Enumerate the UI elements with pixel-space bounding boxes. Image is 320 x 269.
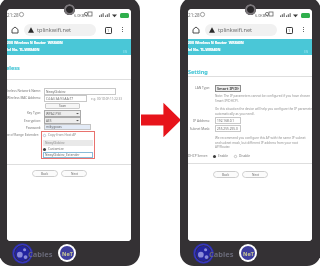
- staticText: Encryption:: [7, 119, 41, 123]
- staticText: tplinkwifi.net: [218, 26, 253, 34]
- staticText: Model No. TL-WR840N: [7, 47, 40, 52]
- staticText: We recommend you configure this AP with …: [215, 136, 306, 148]
- staticText: AC1200 Wireless N Router WR840N: [188, 40, 244, 45]
- staticText: 255.255.255.0: [217, 127, 238, 131]
- staticText: Back: [222, 173, 230, 177]
- staticText: Smart IP(DHCP): [217, 86, 239, 91]
- staticText: Cables: [28, 249, 53, 259]
- staticText: Name of Range Extender:: [7, 133, 39, 137]
- staticText: 6.0KB/s: [74, 13, 88, 18]
- button[interactable]: WPA2-PSK: [46, 110, 79, 117]
- staticText: tplinkwifi.net: [37, 26, 72, 34]
- staticText: DHCP Server:: [188, 154, 208, 158]
- button[interactable]: Home: [190, 24, 201, 35]
- staticText: Customize: [48, 147, 64, 151]
- staticText: Disable: [239, 154, 251, 158]
- staticText: NeT: [62, 250, 73, 257]
- button[interactable]: C4:A3:3A:93:AA:77: [46, 95, 87, 102]
- staticText: EN: [123, 50, 128, 54]
- button[interactable]: NewyGlobinz: [46, 88, 116, 95]
- staticText: NewyGlobinz_Extender: [45, 153, 80, 157]
- button[interactable]: Home: [9, 24, 20, 35]
- button[interactable]: Customize: [43, 147, 64, 151]
- staticText: NewyGlobinz: [45, 141, 65, 145]
- staticText: 192.168.0.1: [217, 119, 235, 123]
- staticText: LAN Type:: [188, 86, 210, 90]
- staticText: WPA2-PSK: [46, 112, 62, 116]
- button[interactable]: Back: [213, 171, 239, 178]
- button[interactable]: tplinkwifi.net: [24, 24, 96, 36]
- staticText: C4:A3:3A:93:AA:77: [46, 97, 74, 101]
- staticText: AES: [46, 119, 52, 123]
- button[interactable]: NewyGlobinz_Extender: [45, 152, 93, 158]
- button[interactable]: 192.168.0.1: [217, 117, 241, 124]
- staticText: NeT: [243, 250, 254, 257]
- staticText: Enable: [218, 154, 229, 158]
- button[interactable]: More options: [298, 24, 308, 34]
- staticText: Copy from Host AP: [48, 133, 77, 137]
- staticText: Wireless MAC Address:: [7, 96, 41, 100]
- button[interactable]: More options: [117, 24, 127, 34]
- staticText: eless: [7, 64, 20, 71]
- staticText: Model No. TL-WR840N: [188, 47, 221, 52]
- staticText: 21:28: [7, 12, 19, 18]
- button[interactable]: Smart IP(DHCP): [217, 85, 239, 92]
- button[interactable]: Copy from Host AP: [43, 133, 77, 137]
- button[interactable]: tplinkwifi.net: [205, 24, 277, 36]
- staticText: e.g. 00:1D:0F:11:22:33: [91, 97, 122, 101]
- button[interactable]: Tabs: [283, 24, 295, 36]
- staticText: mikygoass: [46, 125, 62, 129]
- staticText: 21:28: [188, 12, 200, 18]
- staticText: Cables: [209, 249, 234, 259]
- button[interactable]: Disable: [234, 154, 251, 158]
- button[interactable]: Tabs: [102, 24, 114, 36]
- staticText: Next: [71, 172, 78, 176]
- button[interactable]: 255.255.255.0: [217, 125, 241, 132]
- button[interactable]: Enable: [213, 154, 229, 158]
- button[interactable]: Scan: [45, 103, 80, 109]
- staticText: Key Type:: [7, 111, 41, 115]
- staticText: EN: [304, 50, 309, 54]
- staticText: Setting: [188, 68, 208, 75]
- button[interactable]: AES: [46, 117, 79, 124]
- staticText: NewyGlobinz: [46, 90, 66, 94]
- staticText: 1: [107, 28, 110, 33]
- staticText: (In this situation the device will help …: [215, 107, 312, 115]
- staticText: Back: [41, 172, 49, 176]
- staticText: 6.0KB/s: [255, 13, 269, 18]
- button[interactable]: Back: [32, 170, 58, 177]
- staticText: AC1200 Wireless N Router WR840N: [7, 40, 63, 45]
- staticText: Scan: [59, 104, 67, 108]
- staticText: Password:: [7, 126, 41, 130]
- staticText: 1: [288, 28, 291, 33]
- staticText: Wireless Network Name:: [7, 89, 41, 93]
- staticText: Subnet Mask:: [188, 127, 210, 131]
- button[interactable]: mikygoass: [46, 124, 91, 130]
- staticText: IP Address:: [188, 119, 210, 123]
- button[interactable]: Next: [61, 170, 87, 177]
- staticText: Note: The IP parameters cannot be config…: [215, 94, 311, 102]
- staticText: Next: [252, 173, 259, 177]
- button[interactable]: Next: [242, 171, 268, 178]
